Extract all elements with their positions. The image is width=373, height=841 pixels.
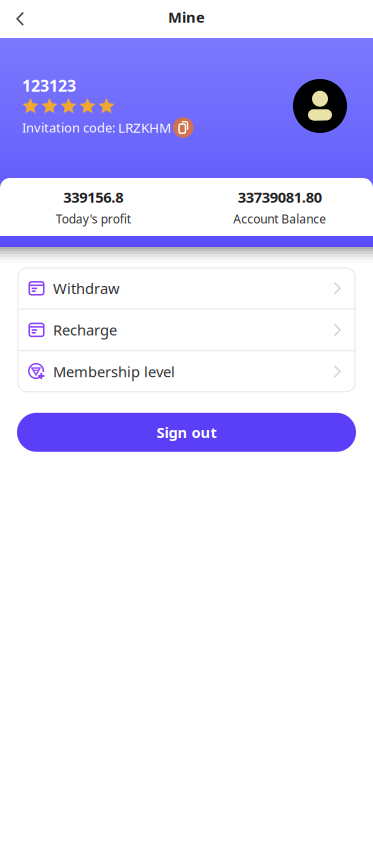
button[interactable]: Sign out xyxy=(17,413,356,452)
staticText: 339156.8 xyxy=(63,187,123,207)
staticText: LRZKHM xyxy=(118,118,171,137)
staticText: Invitation code: xyxy=(22,119,115,136)
staticText: Today's profit xyxy=(56,211,131,227)
staticText: 123123 xyxy=(22,75,76,96)
staticText: Mine xyxy=(168,7,205,27)
button[interactable]: Copy invitation code xyxy=(173,117,193,138)
staticText: Withdraw xyxy=(53,279,120,298)
button[interactable]: Withdraw xyxy=(18,268,355,309)
staticText: Recharge xyxy=(53,320,117,340)
staticText: Sign out xyxy=(156,423,216,442)
button[interactable]: Membership level xyxy=(18,351,355,392)
button[interactable]: Back xyxy=(0,0,39,38)
staticText: Membership level xyxy=(53,362,175,381)
button[interactable]: Recharge xyxy=(18,310,355,350)
staticText: 33739081.80 xyxy=(238,187,322,207)
staticText: Account Balance xyxy=(233,211,326,227)
